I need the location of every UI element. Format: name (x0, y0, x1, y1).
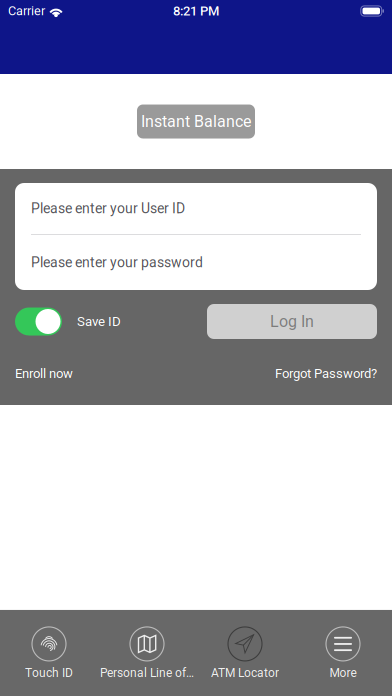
button[interactable]: Log In (207, 304, 377, 339)
staticText: Carrier (8, 4, 45, 18)
staticText: 8:21 PM (173, 3, 219, 19)
staticText: Please enter your User ID (31, 200, 185, 217)
button[interactable]: Save ID (15, 307, 62, 335)
button[interactable]: Please enter your User ID (15, 183, 377, 234)
staticText: More (329, 666, 356, 680)
staticText: Log In (270, 312, 314, 331)
staticText: Forgot Password? (275, 366, 377, 381)
staticText: Save ID (77, 314, 121, 329)
staticText: Touch ID (25, 666, 73, 680)
staticText: Please enter your password (31, 254, 203, 271)
button[interactable]: ATM Locator (196, 627, 294, 680)
staticText: ATM Locator (211, 666, 279, 680)
staticText: Personal Line of… (100, 666, 194, 680)
staticText: Enroll now (15, 366, 73, 381)
button[interactable]: Please enter your password (15, 235, 377, 290)
staticText: Instant Balance (141, 112, 251, 131)
button[interactable]: Touch ID (0, 627, 98, 680)
button[interactable]: Forgot Password? (275, 366, 377, 381)
button[interactable]: More (294, 627, 392, 680)
button[interactable]: Enroll now (15, 366, 73, 381)
button[interactable]: Personal Line of… (98, 627, 196, 680)
button[interactable]: Instant Balance (137, 104, 255, 138)
